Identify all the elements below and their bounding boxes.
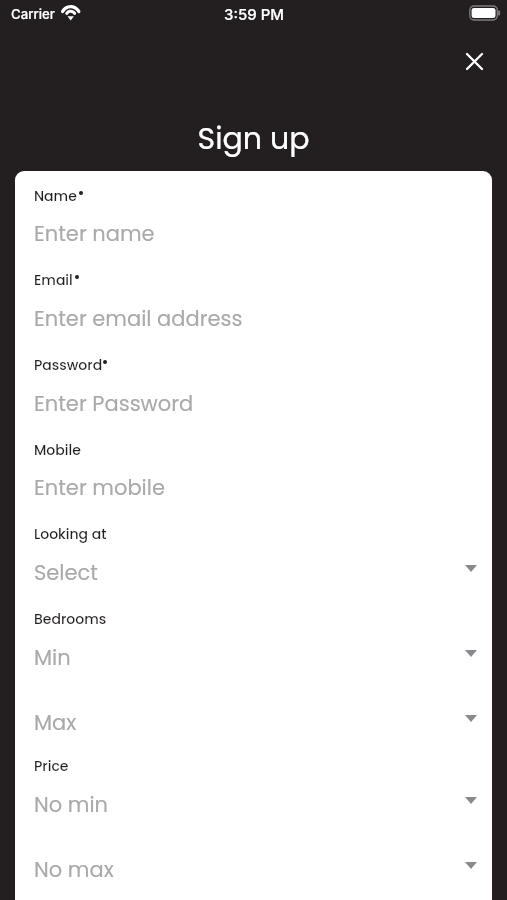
staticText: Select	[34, 558, 98, 587]
staticText: Password	[34, 355, 103, 375]
button[interactable]: Close	[457, 44, 491, 78]
staticText: No min	[34, 790, 109, 819]
staticText: Name	[34, 186, 77, 206]
staticText: 3:59 PM	[224, 5, 284, 23]
staticText: Max	[34, 708, 77, 737]
button[interactable]	[15, 747, 492, 809]
button[interactable]	[15, 600, 492, 662]
staticText: Enter Password	[34, 389, 194, 418]
button[interactable]	[15, 177, 492, 262]
staticText: Carrier	[11, 6, 55, 22]
staticText: Enter name	[34, 219, 155, 248]
button[interactable]	[15, 431, 492, 516]
staticText: Enter mobile	[34, 473, 165, 502]
button[interactable]	[15, 261, 492, 346]
button[interactable]	[15, 346, 492, 431]
staticText: Sign up	[0, 118, 507, 160]
staticText: Min	[34, 643, 71, 672]
staticText: Price	[34, 756, 69, 776]
staticText: Email	[34, 270, 73, 290]
staticText: Enter email address	[34, 304, 243, 333]
staticText: Mobile	[34, 440, 81, 460]
button[interactable]	[15, 515, 492, 600]
staticText: Bedrooms	[34, 609, 107, 629]
button[interactable]	[15, 691, 492, 741]
staticText: No max	[34, 855, 114, 884]
staticText: Looking at	[34, 524, 107, 544]
button[interactable]	[15, 838, 492, 888]
